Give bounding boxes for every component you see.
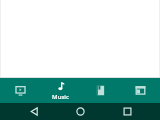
button[interactable]: Home [67, 103, 93, 120]
button[interactable]: Books [80, 78, 120, 103]
staticText: Music [52, 93, 69, 101]
button[interactable]: Music [40, 78, 80, 103]
button[interactable]: Video [0, 78, 40, 103]
button[interactable]: Dashboard [120, 78, 160, 103]
button[interactable]: Recent apps [114, 103, 140, 120]
button[interactable]: Back [21, 103, 47, 120]
